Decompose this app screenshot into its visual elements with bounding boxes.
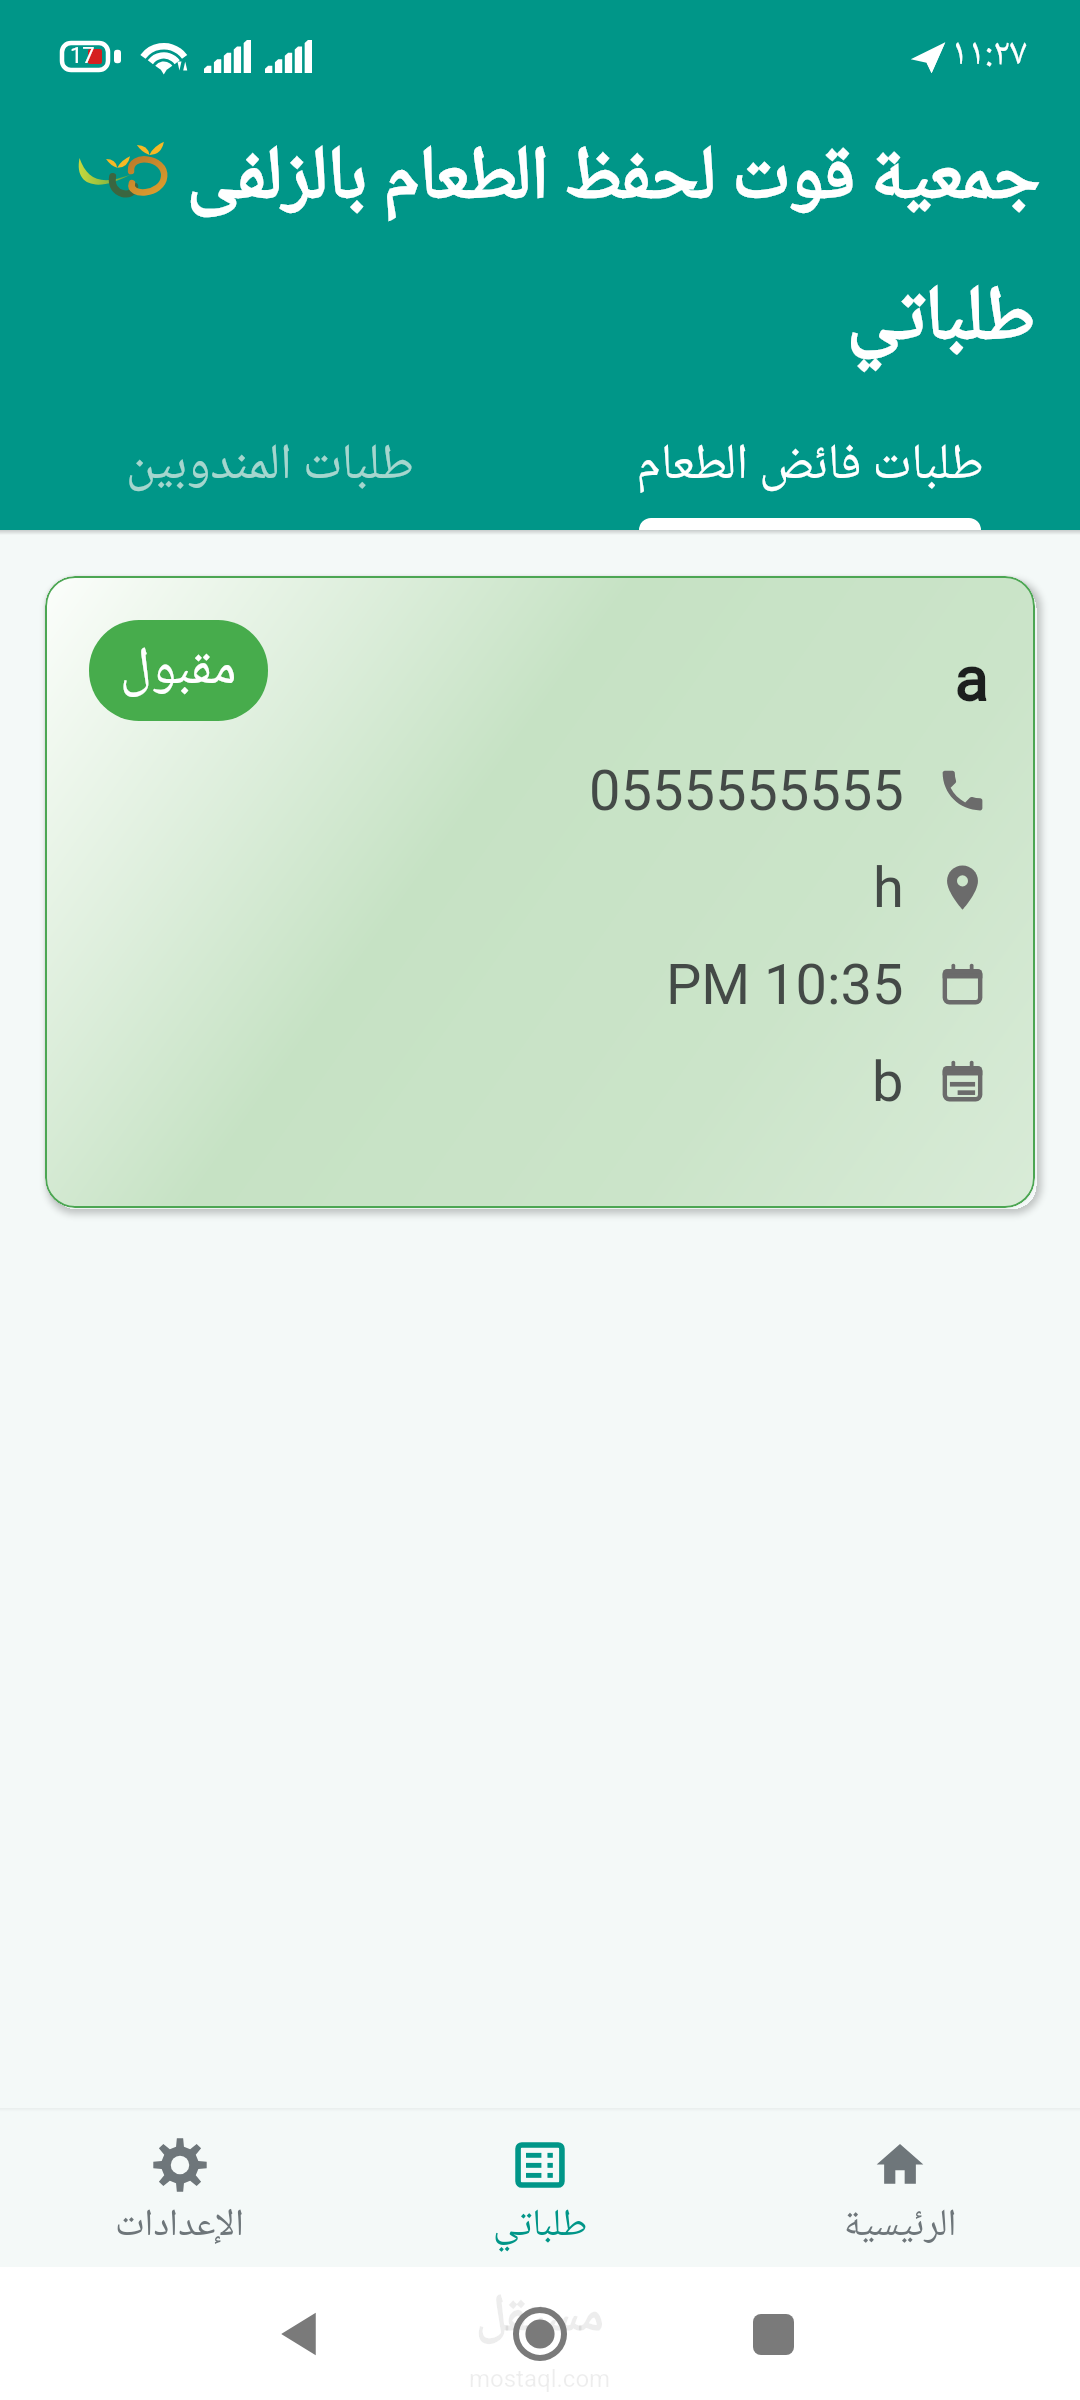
button[interactable]: الإعدادات bbox=[0, 2108, 360, 2267]
staticText: 17 bbox=[70, 43, 95, 69]
staticText: الإعدادات bbox=[115, 2194, 245, 2259]
staticText: b bbox=[872, 1049, 904, 1115]
staticText: جمعية قوت لحفظ الطعام بالزلفى bbox=[187, 118, 1040, 244]
button[interactable]: Back bbox=[256, 2289, 346, 2379]
button[interactable]: الرئيسية bbox=[720, 2108, 1080, 2267]
button[interactable]: مقبول bbox=[89, 620, 268, 721]
button[interactable]: طلباتي bbox=[360, 2108, 720, 2267]
staticText: PM 10:35 bbox=[666, 952, 904, 1018]
staticText: طلبات المندوبين bbox=[126, 425, 414, 510]
staticText: مقبول bbox=[120, 626, 237, 716]
staticText: الرئيسية bbox=[844, 2194, 957, 2259]
staticText: h bbox=[873, 855, 904, 921]
staticText: mostaql.com bbox=[469, 2365, 611, 2393]
staticText: ١١:٢٧ bbox=[951, 23, 1028, 88]
staticText: مستقل bbox=[476, 2274, 604, 2363]
button[interactable]: طلبات فائض الطعام bbox=[540, 420, 1080, 530]
staticText: a bbox=[955, 642, 989, 715]
button[interactable]: Home bbox=[495, 2289, 585, 2379]
staticText: طلباتي bbox=[493, 2194, 588, 2259]
staticText: 0555555555 bbox=[589, 758, 904, 824]
staticText: طلباتي bbox=[847, 257, 1036, 386]
button[interactable]: طلبات المندوبين bbox=[0, 420, 540, 530]
button[interactable]: Recents bbox=[728, 2289, 818, 2379]
staticText: طلبات فائض الطعام bbox=[636, 425, 984, 510]
button[interactable]: مقبول bbox=[45, 576, 1035, 1208]
